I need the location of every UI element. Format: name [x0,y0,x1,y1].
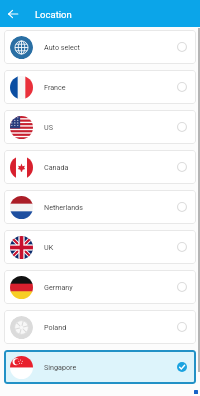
button[interactable]: Netherlands [4,190,196,224]
button[interactable]: Germany [4,270,196,304]
staticText: Poland [44,323,67,331]
button[interactable]: Auto select [4,30,196,64]
button[interactable]: US [4,110,196,144]
staticText: US [44,123,53,131]
staticText: UK [44,243,54,251]
button[interactable]: Poland [4,310,196,344]
button[interactable]: France [4,70,196,104]
staticText: Auto select [44,43,80,51]
staticText: Netherlands [44,203,83,211]
button[interactable]: Canada [4,150,196,184]
button[interactable]: Singapore [4,350,196,384]
staticText: Canada [44,163,69,171]
staticText: France [44,83,66,91]
button[interactable]: UK [4,230,196,264]
staticText: Singapore [44,363,77,371]
staticText: Location [35,9,72,20]
staticText: Germany [44,283,73,291]
button[interactable]: Back [4,5,22,23]
